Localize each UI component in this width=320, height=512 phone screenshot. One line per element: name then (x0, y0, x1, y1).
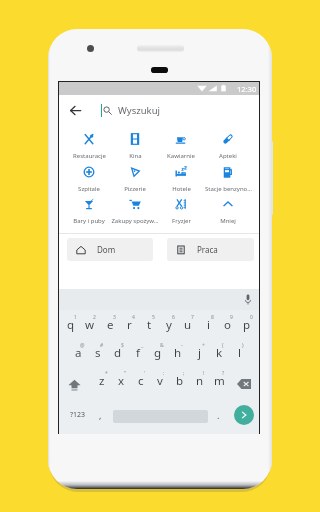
staticText: * (105, 370, 108, 377)
button[interactable]: Backspace (233, 373, 255, 395)
button[interactable]: Shift (63, 373, 85, 395)
staticText: p (243, 317, 251, 333)
button[interactable]: Apteki (203, 133, 253, 160)
button[interactable]: Restauracje (64, 133, 114, 160)
button[interactable]: Stacje benzyno… (203, 166, 253, 193)
staticText: " (124, 370, 127, 377)
button[interactable]: Voice input (238, 289, 258, 310)
staticText: Apteki (219, 152, 237, 160)
staticText: w (85, 317, 95, 333)
staticText: s (95, 345, 101, 361)
staticText: ) (242, 342, 244, 349)
staticText: 7 (191, 314, 194, 321)
button[interactable]: j (189, 343, 209, 369)
staticText: g (154, 345, 162, 361)
button[interactable]: u (178, 315, 198, 341)
staticText: c (138, 373, 144, 389)
button[interactable]: Bary i puby (64, 198, 114, 225)
staticText: ! (203, 370, 205, 377)
staticText: Szpitale (78, 185, 100, 193)
button[interactable]: e (100, 315, 120, 341)
staticText: 12:30 (237, 84, 257, 94)
staticText: . (217, 409, 220, 421)
button[interactable]: . (211, 406, 225, 424)
staticText: b (176, 373, 184, 389)
button[interactable]: Search (234, 405, 254, 425)
button[interactable]: s (88, 343, 108, 369)
button[interactable]: Hotele (156, 166, 206, 193)
staticText: e (107, 317, 114, 333)
staticText: a (75, 345, 82, 361)
button[interactable]: Szpitale (64, 166, 114, 193)
button[interactable]: w (80, 315, 100, 341)
button[interactable]: r (119, 315, 139, 341)
staticText: _ (141, 342, 144, 349)
button[interactable]: c (131, 371, 151, 397)
button[interactable]: Back (62, 97, 89, 124)
staticText: # (100, 342, 104, 349)
staticText: k (216, 345, 223, 361)
button[interactable]: l (229, 343, 249, 369)
staticText: y (166, 317, 172, 333)
staticText: 9 (230, 314, 233, 321)
button[interactable]: ?123 (67, 406, 89, 424)
button[interactable]: f (128, 343, 148, 369)
staticText: Restauracje (73, 152, 106, 160)
staticText: 4 (132, 314, 135, 321)
button[interactable]: z (92, 371, 112, 397)
staticText: z (99, 373, 105, 389)
button[interactable]: a (68, 343, 88, 369)
staticText: d (114, 345, 122, 361)
button[interactable]: y (159, 315, 179, 341)
staticText: f (136, 345, 140, 361)
staticText: Mniej (220, 217, 236, 225)
button[interactable]: b (170, 371, 190, 397)
staticText: Stacje benzyno… (205, 185, 252, 193)
button[interactable]: k (209, 343, 229, 369)
button[interactable]: o (217, 315, 237, 341)
button[interactable]: Fryzjer (156, 198, 206, 225)
button[interactable]: t (139, 315, 159, 341)
staticText: Wyszukuj (118, 104, 160, 117)
button[interactable]: v (150, 371, 170, 397)
staticText: j (198, 345, 201, 361)
staticText: Dom (97, 244, 116, 255)
staticText: Pizzerie (124, 185, 146, 193)
button[interactable]: d (108, 343, 128, 369)
staticText: : (163, 370, 165, 377)
button[interactable]: Pizzerie (110, 166, 160, 193)
button[interactable]: x (111, 371, 131, 397)
button[interactable]: p (237, 315, 257, 341)
button[interactable]: m (209, 371, 229, 397)
staticText: u (184, 317, 192, 333)
staticText: n (196, 373, 204, 389)
staticText: t (147, 317, 152, 333)
staticText: ?123 (70, 410, 86, 420)
staticText: m (214, 373, 225, 389)
button[interactable]: q (61, 315, 81, 341)
staticText: Zakupy spożyw… (111, 217, 159, 225)
staticText: Praca (197, 244, 218, 255)
button[interactable]: Mniej (203, 198, 253, 225)
button[interactable]: Kawiarnie (156, 133, 206, 160)
button[interactable]: Zakupy spożyw… (110, 198, 160, 225)
staticText: - (181, 342, 183, 349)
button[interactable]: , (93, 406, 107, 424)
staticText: 6 (172, 314, 175, 321)
staticText: 5 (152, 314, 155, 321)
button[interactable]: n (190, 371, 210, 397)
button[interactable]: i (198, 315, 218, 341)
staticText: ? (222, 370, 225, 377)
button[interactable]: Praca (167, 238, 254, 261)
button[interactable]: Dom (67, 238, 153, 261)
staticText: h (174, 345, 182, 361)
staticText: Fryzjer (172, 217, 191, 225)
staticText: r (127, 317, 132, 333)
staticText: Kina (129, 152, 142, 160)
staticText: 1 (74, 314, 77, 321)
button[interactable]: h (168, 343, 188, 369)
button[interactable]: g (148, 343, 168, 369)
staticText: , (99, 409, 102, 421)
button[interactable]: Kina (110, 133, 160, 160)
